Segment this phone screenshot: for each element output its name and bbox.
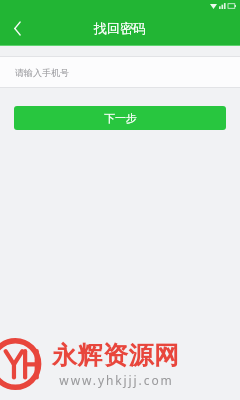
button[interactable]: 请输入手机号 xyxy=(0,57,240,87)
button[interactable]: 下一步 xyxy=(14,106,226,130)
button[interactable]: Back xyxy=(0,11,34,45)
staticText: 请输入手机号 xyxy=(15,67,69,78)
staticText: www.yhkjjj.com xyxy=(59,372,174,388)
staticText: 找回密码 xyxy=(94,20,146,36)
staticText: 永辉资源网 xyxy=(52,340,180,371)
staticText: 下一步 xyxy=(104,111,137,125)
